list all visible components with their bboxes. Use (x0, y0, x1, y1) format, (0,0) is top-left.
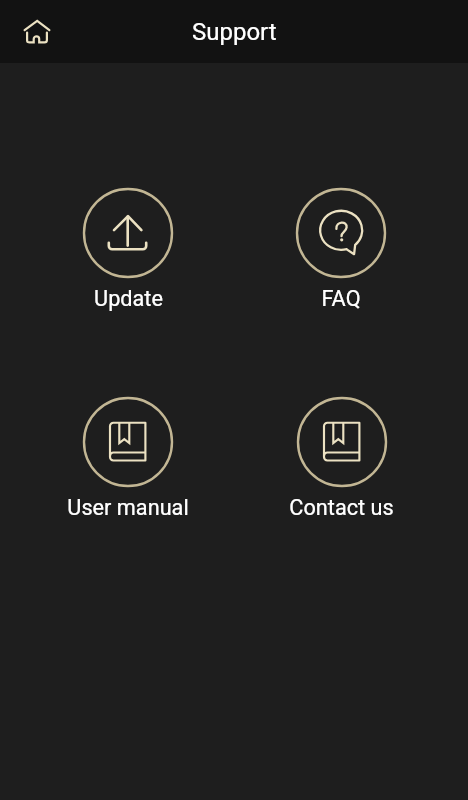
staticText: User manual (67, 495, 189, 520)
staticText: Support (192, 18, 277, 46)
staticText: Contact us (289, 495, 394, 520)
button[interactable]: User manual (53, 390, 203, 525)
button[interactable]: Contact us (266, 390, 416, 525)
staticText: FAQ (321, 286, 361, 311)
button[interactable]: Home (13, 8, 61, 56)
button[interactable]: Update (53, 181, 203, 316)
button[interactable]: FAQ (266, 181, 416, 316)
staticText: Update (94, 286, 163, 311)
